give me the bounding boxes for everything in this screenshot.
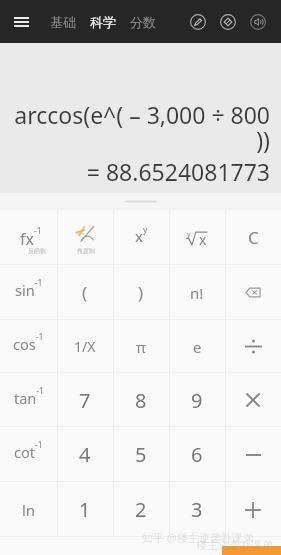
button[interactable]: e — [169, 320, 225, 373]
staticText: xy — [135, 224, 148, 246]
staticText: y — [187, 230, 191, 240]
staticText: 9 — [191, 387, 203, 414]
staticText: 角度制 — [77, 247, 95, 255]
staticText: 3 — [191, 496, 203, 523]
button[interactable] — [225, 482, 281, 537]
button[interactable]: Sound — [243, 0, 273, 43]
button[interactable]: 8 — [113, 373, 169, 427]
staticText: arccos(e^( – 3,000 ÷ 800 )) — [11, 99, 270, 156]
staticText: e — [193, 337, 202, 357]
button[interactable]: ln — [0, 482, 57, 537]
button[interactable] — [225, 373, 281, 427]
staticText: 反函数 — [28, 247, 46, 255]
button[interactable]: y — [169, 210, 225, 265]
button[interactable]: fx-1 — [0, 210, 57, 265]
staticText: = 88.6524081773 — [11, 156, 270, 187]
button[interactable]: Handwriting — [183, 0, 213, 43]
staticText: 基础 — [50, 14, 76, 30]
staticText: 2 — [135, 496, 147, 523]
button[interactable]: cot-1 — [0, 427, 57, 482]
staticText: 楼主逆袭补课弟 — [196, 538, 273, 552]
staticText: cos-1 — [13, 331, 44, 354]
staticText: x — [199, 230, 207, 247]
staticText: 1 — [79, 496, 91, 523]
button[interactable]: cos-1 — [0, 320, 57, 373]
button[interactable] — [225, 265, 281, 320]
button[interactable]: 分数 — [130, 0, 156, 43]
staticText: 知乎 @楼主逆袭补课弟 — [142, 530, 254, 545]
button[interactable]: 6 — [169, 427, 225, 482]
button[interactable]: 9 — [169, 373, 225, 427]
staticText: 5 — [135, 441, 147, 468]
button[interactable]: 5 — [113, 427, 169, 482]
button[interactable]: 基础 — [50, 0, 76, 43]
staticText: sin-1 — [15, 277, 43, 300]
staticText: 4 — [79, 441, 91, 468]
staticText: C — [248, 226, 259, 249]
button[interactable]: 科学 — [90, 0, 116, 43]
button[interactable]: tan-1 — [0, 373, 57, 427]
staticText: ) — [138, 281, 144, 304]
staticText: 7 — [79, 387, 91, 414]
staticText: ln — [22, 500, 36, 520]
staticText: π — [136, 337, 146, 357]
staticText: tan-1 — [14, 385, 44, 408]
button[interactable]: xy — [113, 210, 169, 265]
button[interactable]: Theme — [213, 0, 243, 43]
button[interactable]: 1/X — [57, 320, 113, 373]
button[interactable]: 3 — [169, 482, 225, 537]
button[interactable]: ) — [113, 265, 169, 320]
button[interactable]: 角度制 — [57, 210, 113, 265]
staticText: 分数 — [130, 14, 156, 30]
staticText: 1/X — [74, 337, 96, 356]
staticText: fx-1 — [20, 225, 42, 249]
button[interactable]: 7 — [57, 373, 113, 427]
button[interactable]: C — [225, 210, 281, 265]
button[interactable] — [225, 427, 281, 482]
staticText: 8 — [135, 387, 147, 414]
button[interactable]: ( — [57, 265, 113, 320]
staticText: n! — [190, 283, 204, 303]
staticText: 6 — [191, 441, 203, 468]
staticText: cot-1 — [14, 439, 43, 462]
button[interactable]: 4 — [57, 427, 113, 482]
staticText: ( — [82, 281, 88, 304]
button[interactable]: 2 — [113, 482, 169, 537]
button[interactable]: n! — [169, 265, 225, 320]
button[interactable]: 1 — [57, 482, 113, 537]
button[interactable]: π — [113, 320, 169, 373]
button[interactable]: Menu — [0, 0, 43, 43]
button[interactable]: sin-1 — [0, 265, 57, 320]
staticText: 科学 — [90, 14, 116, 30]
button[interactable] — [225, 320, 281, 373]
